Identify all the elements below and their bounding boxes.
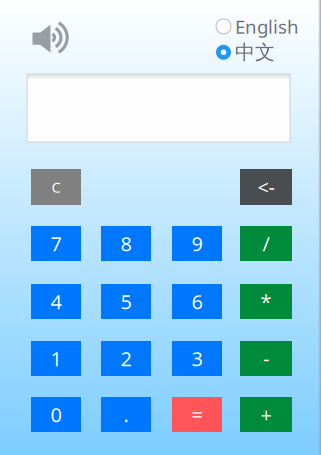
staticText: 0 — [50, 401, 61, 428]
staticText: 2 — [120, 345, 131, 372]
button[interactable]: 1 — [31, 341, 81, 376]
button[interactable]: <- — [240, 169, 292, 205]
staticText: <- — [257, 174, 274, 200]
staticText: English — [235, 14, 299, 39]
staticText: = — [191, 401, 202, 428]
staticText: 1 — [50, 345, 61, 372]
staticText: C — [51, 177, 60, 197]
button[interactable]: * — [240, 284, 292, 319]
button[interactable]: / — [240, 226, 292, 261]
button[interactable]: 2 — [101, 341, 151, 376]
button[interactable]: = — [172, 397, 222, 432]
button[interactable]: Speak result — [32, 21, 70, 54]
button[interactable]: 5 — [101, 284, 151, 319]
button[interactable]: - — [240, 341, 292, 376]
staticText: 6 — [191, 288, 202, 315]
button[interactable]: English — [216, 14, 299, 39]
staticText: * — [260, 288, 271, 315]
button[interactable]: 7 — [31, 226, 81, 261]
button[interactable]: C — [31, 169, 81, 205]
button[interactable]: . — [101, 397, 151, 432]
button[interactable]: 9 — [172, 226, 222, 261]
button[interactable]: 8 — [101, 226, 151, 261]
staticText: / — [262, 230, 269, 257]
staticText: 3 — [191, 345, 202, 372]
staticText: - — [263, 345, 269, 372]
staticText: 4 — [50, 288, 61, 315]
staticText: + — [260, 401, 271, 428]
staticText: . — [123, 401, 128, 428]
staticText: 7 — [50, 230, 61, 257]
button[interactable]: + — [240, 397, 292, 432]
button[interactable]: 6 — [172, 284, 222, 319]
staticText: 中文 — [235, 40, 275, 65]
button[interactable]: 0 — [31, 397, 81, 432]
button[interactable]: 3 — [172, 341, 222, 376]
staticText: 9 — [191, 230, 202, 257]
button[interactable]: 中文 — [216, 40, 275, 65]
button[interactable]: 4 — [31, 284, 81, 319]
staticText: 8 — [120, 230, 131, 257]
staticText: 5 — [120, 288, 131, 315]
